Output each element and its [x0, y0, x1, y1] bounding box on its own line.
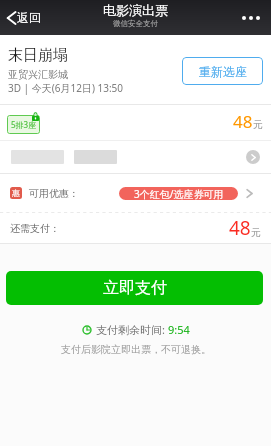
staticText: 5排3座: [11, 119, 37, 130]
staticText: 还需支付：: [10, 222, 60, 235]
staticText: 重新选座: [199, 64, 247, 79]
staticText: 48: [229, 215, 251, 241]
staticText: 惠: [12, 188, 20, 198]
staticText: 支付剩余时间:: [96, 322, 165, 337]
button[interactable]: More options: [232, 0, 271, 35]
staticText: 3个红包/选座券可用: [134, 187, 224, 200]
button[interactable]: 立即支付: [6, 271, 263, 305]
staticText: 电影演出票: [103, 2, 168, 18]
button[interactable]: 惠: [0, 174, 271, 212]
staticText: 微信安全支付: [113, 19, 158, 28]
staticText: 亚贸兴汇影城: [8, 68, 68, 81]
staticText: 支付后影院立即出票，不可退换。: [61, 343, 211, 356]
button[interactable]: [0, 141, 271, 173]
staticText: 3D | 今天(6月12日) 13:50: [8, 81, 124, 95]
staticText: 可用优惠：: [29, 187, 79, 200]
staticText: 9:54: [168, 322, 190, 337]
staticText: 末日崩塌: [8, 46, 68, 65]
button[interactable]: 重新选座: [182, 57, 263, 85]
staticText: 元: [253, 118, 263, 131]
staticText: 立即支付: [103, 278, 167, 298]
button[interactable]: 返回: [0, 0, 49, 35]
staticText: 返回: [17, 10, 41, 25]
staticText: 元: [251, 226, 261, 239]
staticText: 48: [233, 110, 253, 133]
